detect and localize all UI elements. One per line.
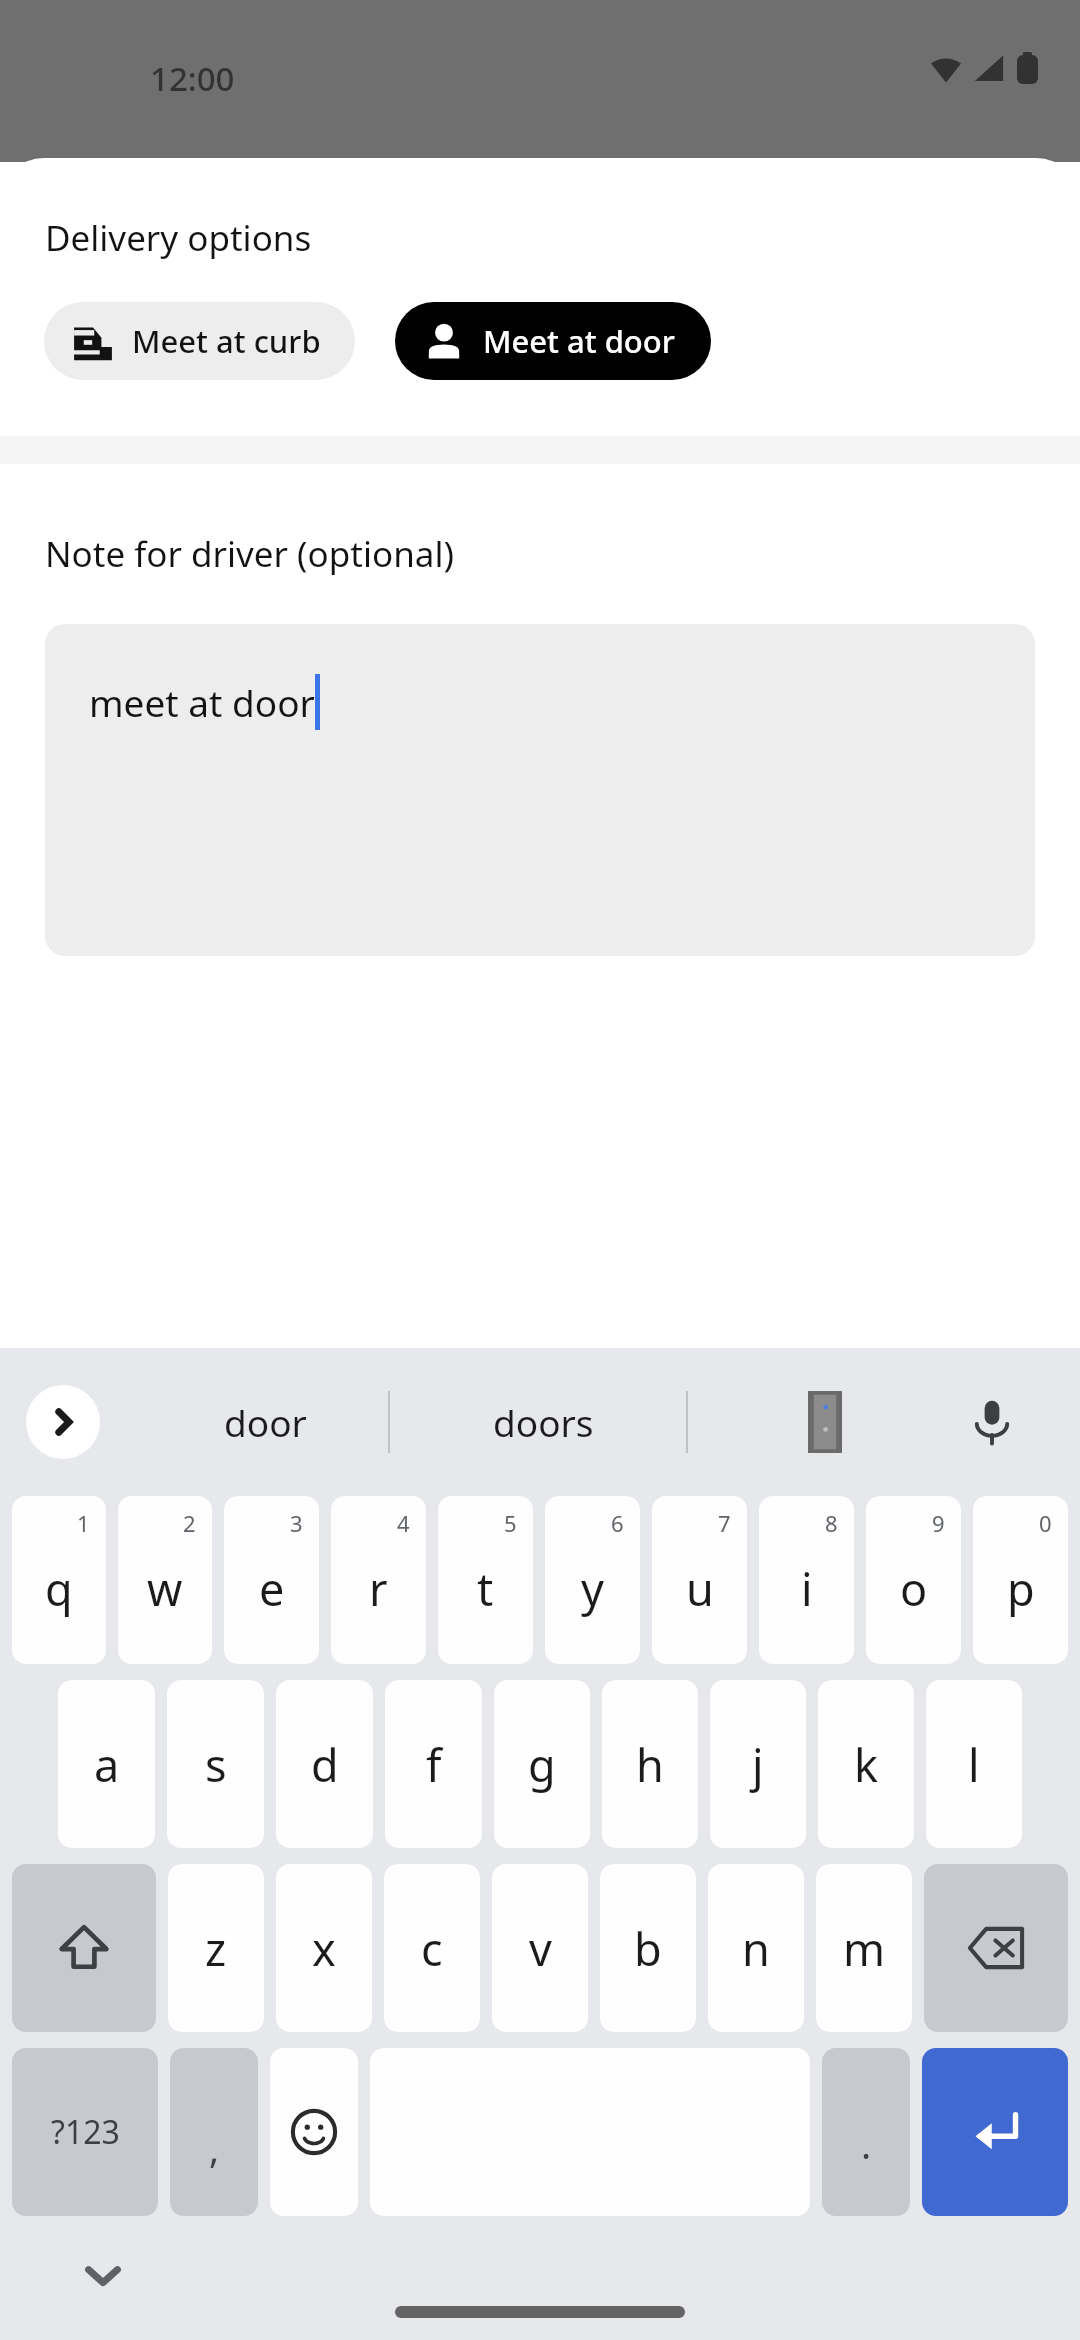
button[interactable]: l [926,1680,1022,1848]
staticText: m [843,1918,886,1979]
staticText: 4 [397,1508,410,1538]
button[interactable]: j [710,1680,806,1848]
staticText: w [147,1558,183,1619]
button[interactable]: d [276,1680,373,1848]
staticText: h [636,1734,664,1795]
staticText: 7 [718,1508,731,1538]
button[interactable]: Door emoji [770,1367,880,1477]
staticText: door [224,1397,307,1447]
staticText: Delivery options [45,214,312,262]
staticText: 1 [77,1508,90,1538]
button[interactable]: 2 [118,1496,212,1664]
staticText: Note for driver (optional) [45,530,454,578]
staticText: j [752,1734,764,1795]
button[interactable]: Backspace [924,1864,1068,2032]
button[interactable]: Show toolbar [26,1385,100,1459]
button[interactable]: door [150,1348,380,1496]
staticText: p [1007,1558,1035,1619]
staticText: , [209,2122,220,2174]
button[interactable]: doors [418,1348,668,1496]
staticText: t [477,1558,494,1619]
button[interactable]: 8 [759,1496,854,1664]
button[interactable]: Meet at curb [44,302,355,380]
button[interactable]: 7 [652,1496,747,1664]
button[interactable]: meet at door [45,624,1035,956]
staticText: i [801,1558,813,1619]
staticText: 8 [825,1508,838,1538]
button[interactable]: Hide keyboard [60,2232,146,2318]
button[interactable]: v [492,1864,588,2032]
button[interactable]: m [816,1864,912,2032]
button[interactable]: 6 [545,1496,640,1664]
staticText: doors [493,1397,594,1447]
button[interactable]: 5 [438,1496,533,1664]
staticText: n [742,1918,770,1979]
staticText: z [205,1918,227,1979]
staticText: y [581,1558,604,1619]
button[interactable]: 1 [12,1496,106,1664]
button[interactable]: Shift [12,1864,156,2032]
button[interactable]: c [384,1864,480,2032]
button[interactable]: 9 [866,1496,961,1664]
button[interactable]: 0 [973,1496,1068,1664]
staticText: meet at door [89,677,315,727]
staticText: r [369,1558,388,1619]
staticText: ?123 [51,2110,120,2154]
button[interactable]: a [58,1680,155,1848]
staticText: g [528,1734,556,1795]
staticText: s [205,1734,227,1795]
staticText: l [968,1734,980,1795]
staticText: q [45,1558,73,1619]
button[interactable]: Meet at door [395,302,711,380]
staticText: Meet at door [483,320,675,362]
staticText: d [311,1734,339,1795]
staticText: 12:00 [150,56,235,101]
button[interactable]: 4 [331,1496,426,1664]
staticText: x [312,1918,336,1979]
button[interactable]: f [385,1680,482,1848]
button[interactable]: x [276,1864,372,2032]
staticText: . [861,2118,872,2170]
button[interactable]: h [602,1680,698,1848]
staticText: k [854,1734,879,1795]
button[interactable]: k [818,1680,914,1848]
staticText: a [94,1734,120,1795]
button[interactable]: Emoji [270,2048,358,2216]
staticText: 2 [183,1508,196,1538]
button[interactable]: , [170,2048,258,2216]
staticText: f [426,1734,442,1795]
staticText: 0 [1039,1508,1052,1538]
button[interactable]: z [168,1864,264,2032]
staticText: Meet at curb [132,320,321,362]
staticText: v [529,1918,552,1979]
staticText: c [421,1918,443,1979]
staticText: b [634,1918,662,1979]
staticText: u [686,1558,714,1619]
button[interactable]: 3 [224,1496,319,1664]
button[interactable]: s [167,1680,264,1848]
staticText: e [259,1558,285,1619]
button[interactable]: g [494,1680,590,1848]
staticText: o [900,1558,928,1619]
button[interactable]: n [708,1864,804,2032]
button[interactable]: ?123 [12,2048,158,2216]
button[interactable]: . [822,2048,910,2216]
staticText: 3 [290,1508,303,1538]
button[interactable]: Voice input [942,1372,1042,1472]
staticText: 5 [504,1508,517,1538]
staticText: 9 [932,1508,945,1538]
staticText: 6 [611,1508,624,1538]
button[interactable]: Enter [922,2048,1068,2216]
button[interactable]: b [600,1864,696,2032]
